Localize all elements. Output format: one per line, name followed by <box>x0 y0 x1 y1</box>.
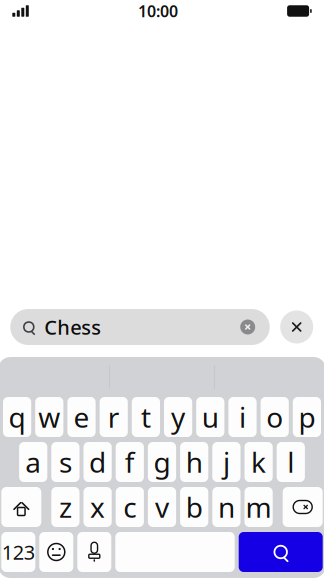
button[interactable]: q <box>3 397 31 437</box>
staticText: 123 <box>2 539 35 565</box>
staticText: h <box>186 443 203 481</box>
button[interactable]: n <box>212 487 240 527</box>
staticText: t <box>141 398 151 436</box>
button[interactable]: Clear text <box>237 316 259 338</box>
staticText: 10:00 <box>138 0 178 22</box>
button[interactable]: Shift <box>1 487 41 527</box>
staticText: u <box>202 398 219 436</box>
button[interactable]: l <box>277 442 305 482</box>
button[interactable]: i <box>228 397 257 437</box>
button[interactable]: j <box>212 442 240 482</box>
button[interactable]: d <box>83 442 112 482</box>
button[interactable]: g <box>148 442 176 482</box>
staticText: s <box>59 443 72 481</box>
button[interactable]: Close search <box>280 310 314 344</box>
staticText: d <box>89 443 106 481</box>
button[interactable]: Delete <box>283 487 323 527</box>
button[interactable]: 123 <box>1 532 35 572</box>
staticText: o <box>266 398 283 436</box>
button[interactable]: t <box>132 397 160 437</box>
staticText: n <box>218 488 235 526</box>
staticText: j <box>223 443 230 481</box>
button[interactable]: v <box>148 487 176 527</box>
button[interactable]: y <box>164 397 192 437</box>
staticText: m <box>246 488 272 526</box>
staticText: Chess <box>44 314 101 340</box>
staticText: l <box>287 443 294 481</box>
button[interactable]: u <box>196 397 224 437</box>
button[interactable]: o <box>261 397 289 437</box>
button[interactable]: k <box>244 442 273 482</box>
staticText: q <box>9 398 26 436</box>
button[interactable]: s <box>51 442 79 482</box>
staticText: g <box>153 443 170 481</box>
staticText: z <box>59 488 72 526</box>
staticText: y <box>171 398 185 436</box>
button[interactable]: h <box>180 442 208 482</box>
button[interactable]: space <box>115 532 235 572</box>
staticText: e <box>73 398 89 436</box>
button[interactable]: w <box>35 397 63 437</box>
staticText: f <box>125 443 135 481</box>
button[interactable]: f <box>116 442 144 482</box>
button[interactable]: c <box>116 487 144 527</box>
staticText: k <box>251 443 266 481</box>
staticText: p <box>298 398 315 436</box>
staticText: b <box>186 488 203 526</box>
button[interactable]: Search <box>239 532 323 572</box>
button[interactable]: r <box>100 397 128 437</box>
button[interactable]: x <box>83 487 112 527</box>
button[interactable]: a <box>19 442 47 482</box>
button[interactable]: Emoji <box>39 532 73 572</box>
button[interactable]: e <box>67 397 96 437</box>
button[interactable]: b <box>180 487 208 527</box>
staticText: v <box>155 488 169 526</box>
staticText: a <box>25 443 41 481</box>
staticText: i <box>239 398 246 436</box>
staticText: x <box>90 488 105 526</box>
button[interactable]: p <box>293 397 321 437</box>
staticText: w <box>38 398 60 436</box>
staticText: c <box>123 488 136 526</box>
button[interactable]: z <box>51 487 79 527</box>
staticText: r <box>108 398 120 436</box>
button[interactable]: m <box>244 487 273 527</box>
button[interactable]: Dictate <box>77 532 111 572</box>
